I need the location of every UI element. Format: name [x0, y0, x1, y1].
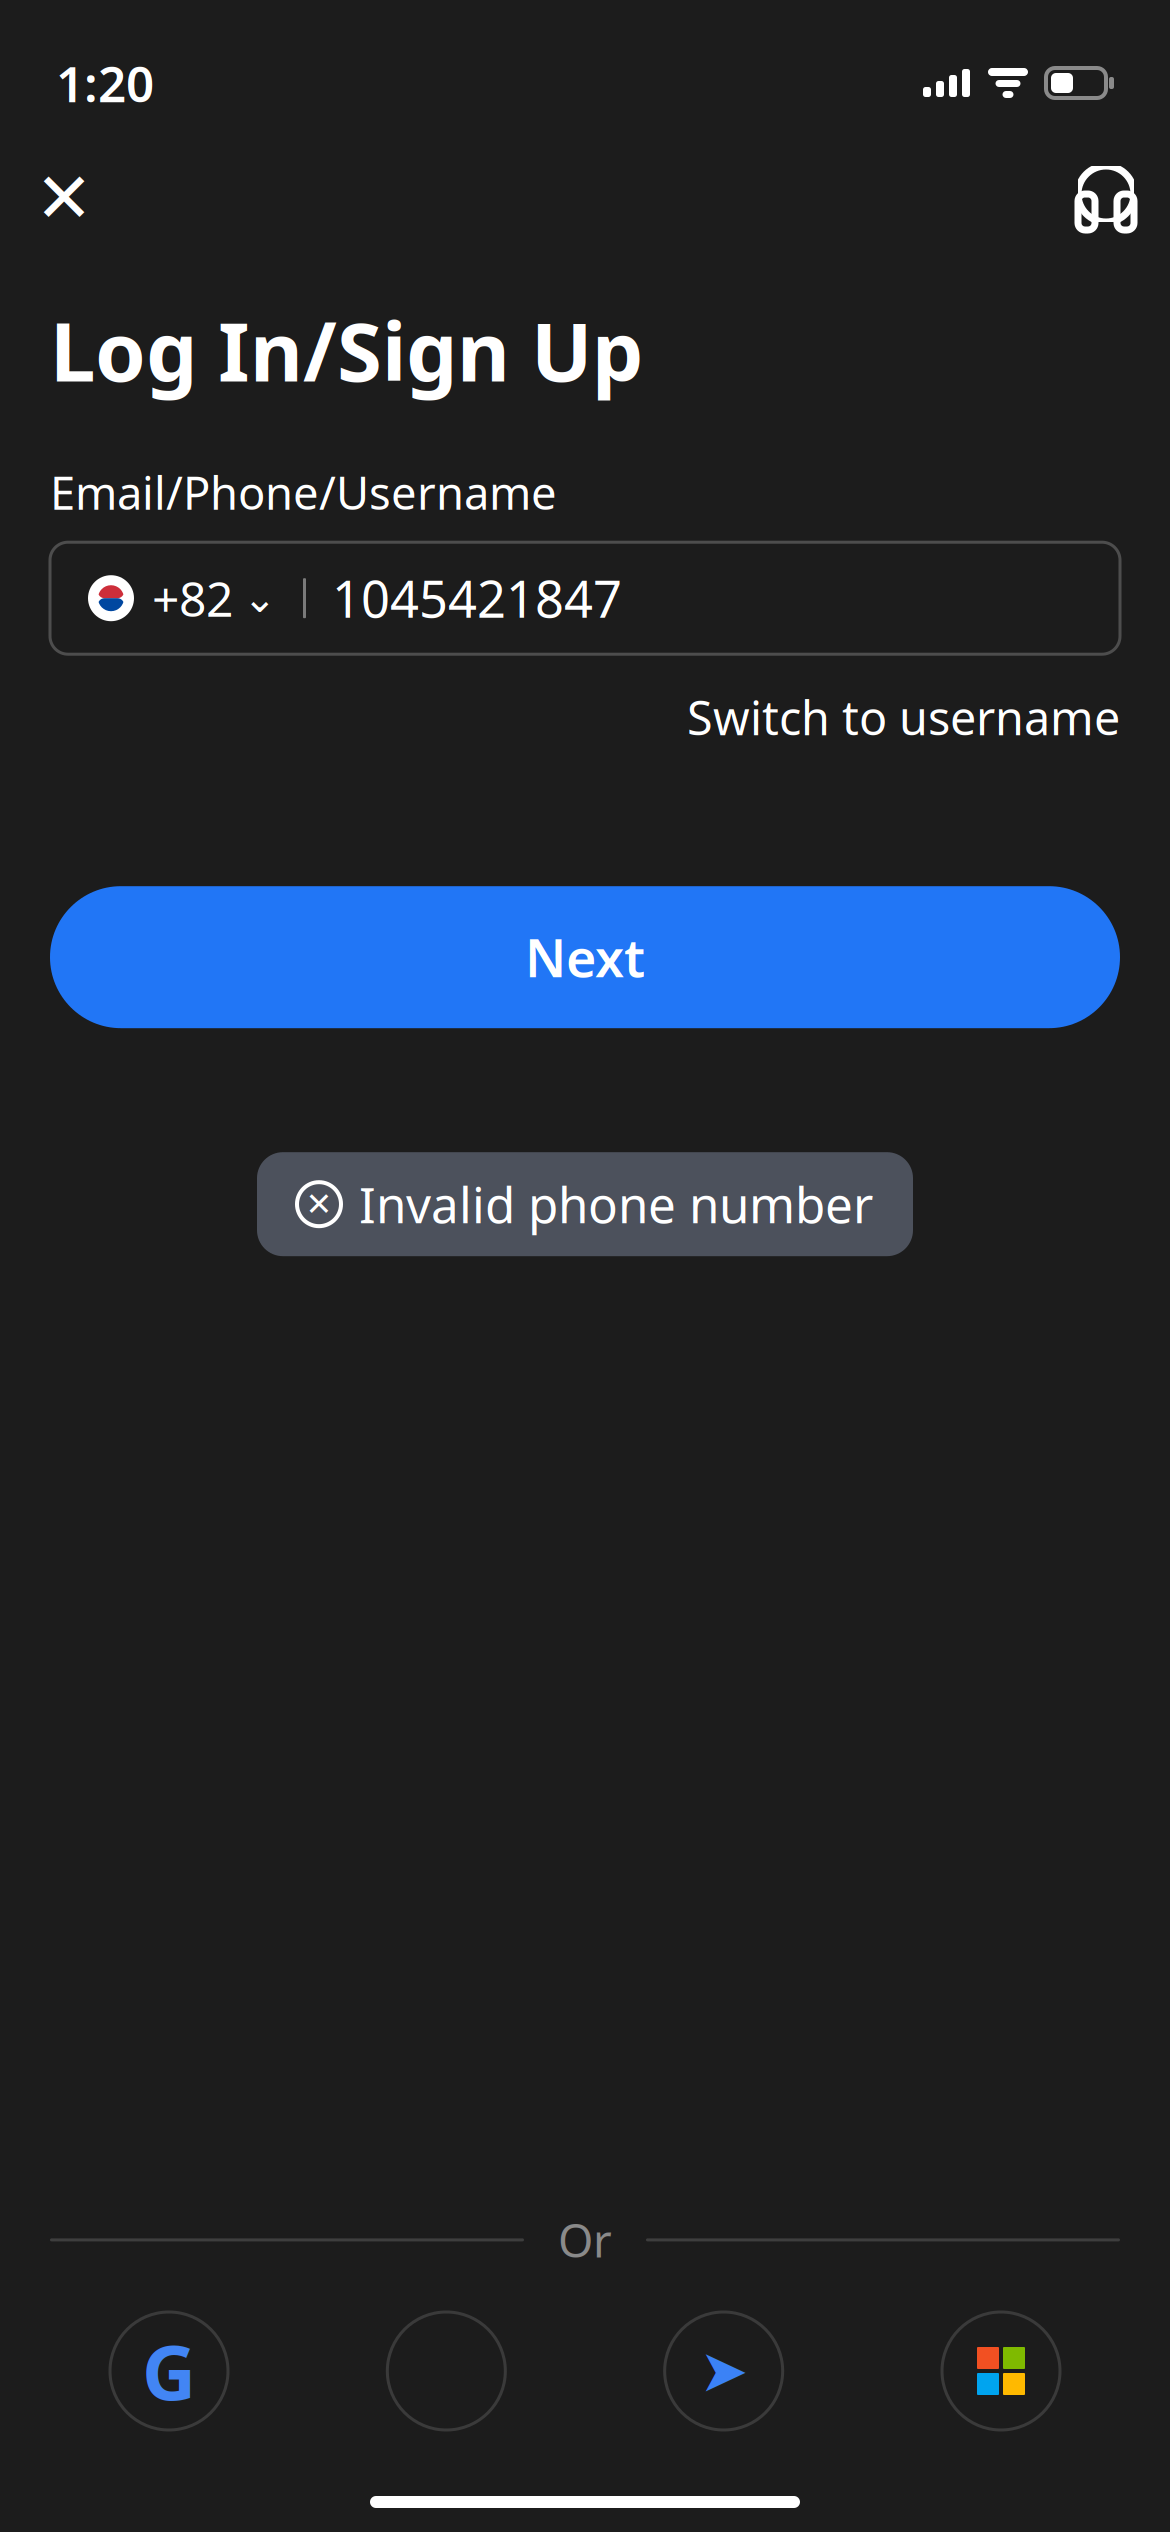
staticText: Invalid phone number — [359, 1171, 873, 1237]
staticText: Next — [525, 923, 645, 992]
staticText: Email/Phone/Username — [50, 462, 557, 522]
button[interactable]: Sign in with Microsoft — [942, 2312, 1060, 2430]
staticText: G — [142, 2321, 196, 2421]
button[interactable]: Sign in with Apple — [387, 2312, 505, 2430]
staticText: 1:20 — [56, 50, 154, 116]
staticText: Switch to username — [687, 686, 1120, 748]
staticText: +82 — [152, 566, 233, 630]
button[interactable]: Switch to username — [687, 676, 1120, 758]
button[interactable]: +82 — [50, 542, 1120, 654]
button[interactable]: Close — [18, 152, 110, 244]
staticText: Log In/Sign Up — [50, 296, 643, 404]
staticText: ➤ — [699, 2338, 748, 2404]
staticText: 1045421847 — [332, 565, 622, 632]
button[interactable]: Next — [50, 886, 1120, 1028]
button[interactable]: Customer support — [1060, 152, 1152, 244]
staticText: Or — [558, 2210, 612, 2270]
staticText: ⌄ — [243, 575, 277, 621]
button[interactable]: Sign in with Google — [110, 2312, 228, 2430]
button[interactable]: Sign in with Telegram — [665, 2312, 783, 2430]
staticText: ✕ — [35, 159, 93, 237]
staticText: ✕ — [305, 1186, 332, 1222]
